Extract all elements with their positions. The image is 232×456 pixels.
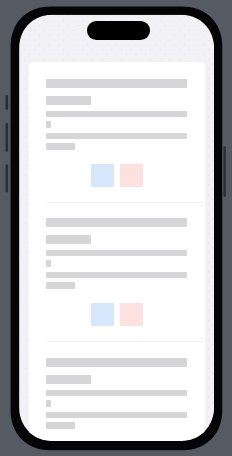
button[interactable]: Loading item 2 (46, 212, 203, 342)
button[interactable]: Loading item 1 (46, 73, 203, 203)
other: Front camera and sensors (87, 21, 150, 40)
button[interactable]: Loading item 3 (46, 352, 203, 441)
